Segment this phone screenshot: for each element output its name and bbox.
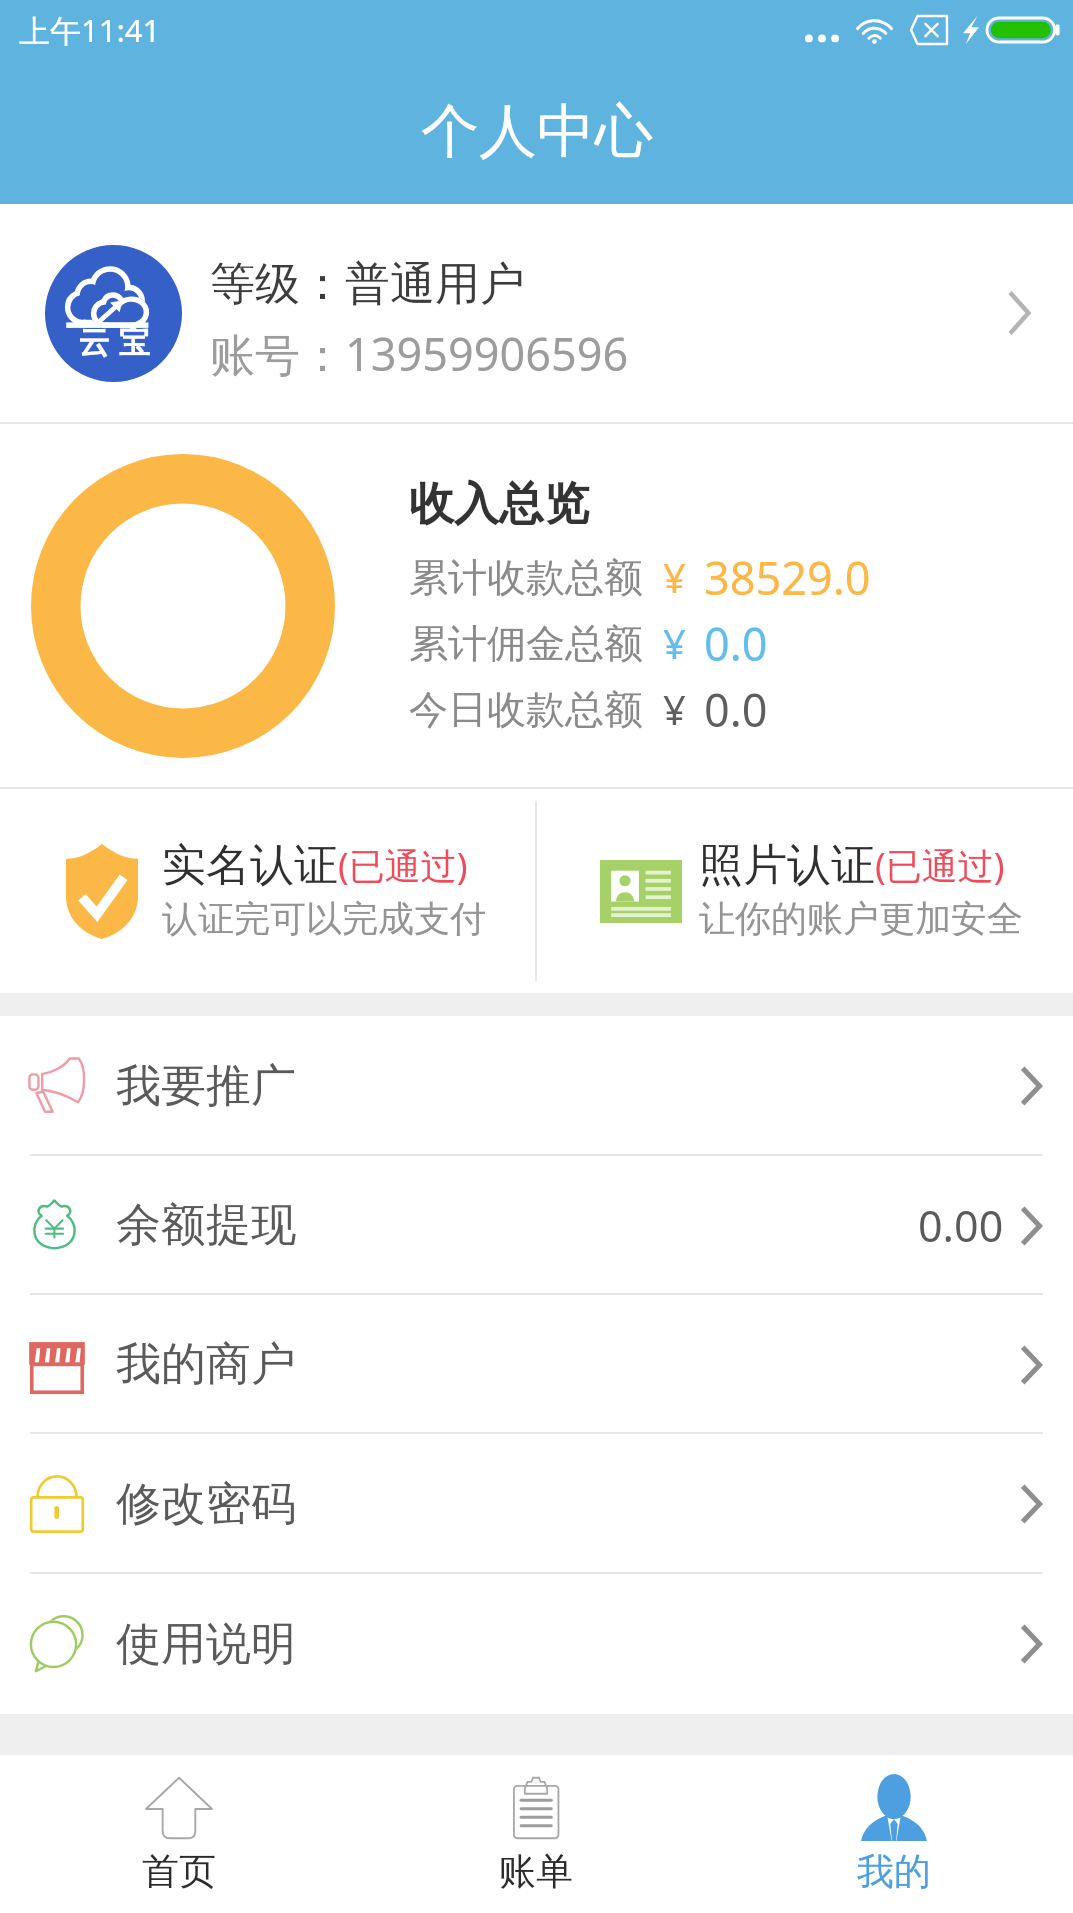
staticText: 认证完可以完成支付 <box>162 896 486 941</box>
staticText: 云宝 <box>74 323 154 362</box>
staticText: 我要推广 <box>116 1058 296 1115</box>
staticText: 0.0 <box>704 679 768 740</box>
staticText: 我的商户 <box>116 1336 296 1393</box>
staticText: 让你的账户更加安全 <box>699 896 1023 941</box>
staticText: 累计佣金总额 <box>409 619 643 668</box>
staticText: 等级：普通用户 <box>210 256 525 313</box>
staticText: 使用说明 <box>116 1616 296 1673</box>
staticText: 上午11:41 <box>19 9 161 51</box>
button[interactable]: 使用说明 <box>0 1574 1073 1714</box>
staticText: (已通过) <box>338 841 468 890</box>
staticText: 个人中心 <box>421 95 653 168</box>
button[interactable]: 我要推广 <box>0 1016 1073 1156</box>
staticText: 0.00 <box>918 1196 1004 1255</box>
staticText: 首页 <box>142 1848 216 1895</box>
staticText: 我的 <box>857 1848 931 1895</box>
staticText: 修改密码 <box>116 1476 296 1533</box>
staticText: 账单 <box>499 1848 573 1895</box>
button[interactable]: 实名认证 <box>0 789 535 993</box>
staticText: 实名认证 <box>162 838 338 893</box>
staticText: 余额提现 <box>116 1197 296 1254</box>
staticText: ¥ <box>663 682 686 736</box>
staticText: 收入总览 <box>409 476 589 533</box>
button[interactable]: 照片认证 <box>537 789 1073 993</box>
button[interactable]: 我的商户 <box>0 1295 1073 1434</box>
staticText: 38529.0 <box>704 547 871 608</box>
staticText: 账号：13959906596 <box>210 323 629 384</box>
staticText: ¥ <box>663 550 686 604</box>
staticText: 今日收款总额 <box>409 685 643 734</box>
button[interactable]: Bills <box>357 1755 715 1913</box>
button[interactable]: Home <box>0 1755 357 1913</box>
staticText: 累计收款总额 <box>409 553 643 602</box>
staticText: ¥ <box>663 616 686 670</box>
staticText: (已通过) <box>875 841 1005 890</box>
staticText: 0.0 <box>704 613 768 674</box>
button[interactable]: 修改密码 <box>0 1434 1073 1574</box>
button[interactable]: 云宝 <box>0 204 1073 422</box>
button[interactable]: 余额提现 <box>0 1156 1073 1295</box>
staticText: 照片认证 <box>699 838 875 893</box>
button[interactable]: Mine <box>715 1755 1073 1913</box>
